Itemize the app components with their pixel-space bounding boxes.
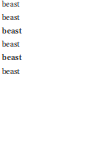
- staticText: beast: [2, 13, 20, 23]
- staticText: beast: [2, 53, 22, 62]
- staticText: beast: [2, 40, 20, 49]
- staticText: beast: [2, 0, 20, 9]
- staticText: beast: [2, 27, 22, 36]
- staticText: beast: [2, 66, 20, 77]
